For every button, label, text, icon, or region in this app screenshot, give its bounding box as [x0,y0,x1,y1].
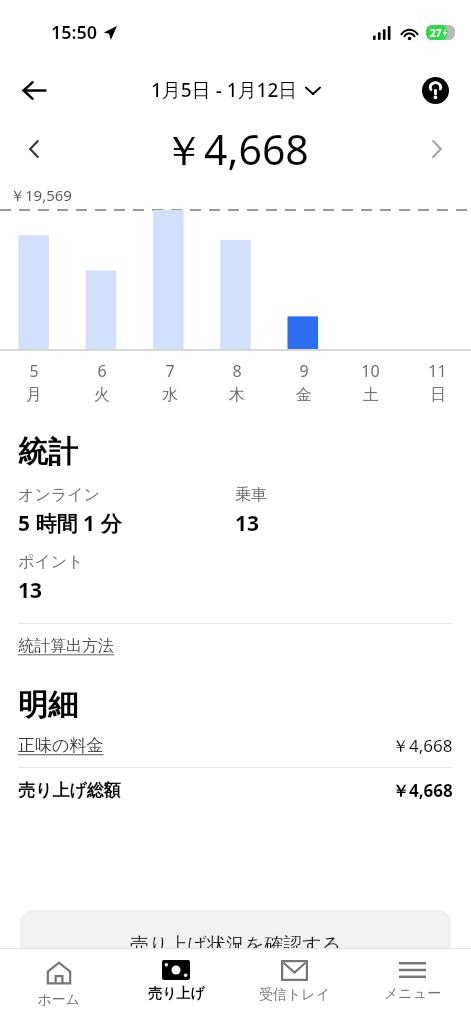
staticText: 受信トレイ [259,986,330,1004]
staticText: ホーム [37,991,80,1009]
button[interactable]: Next week [417,129,457,169]
button[interactable]: 6 [68,360,136,405]
staticText: 明細 [18,686,78,724]
staticText: 7 [165,360,175,382]
button[interactable]: 11 [404,360,471,405]
staticText: ￥4,668 [163,121,309,177]
button[interactable]: 5 [0,360,68,405]
staticText: 10 [361,360,380,382]
button[interactable]: 10 [337,360,404,405]
staticText: 8 [232,360,242,382]
staticText: 金 [296,385,312,405]
staticText: 乗車 [235,485,267,505]
button[interactable]: 正味の料金 [18,734,453,757]
staticText: 13 [18,576,43,605]
staticText: 統計 [18,433,78,471]
staticText: 水 [162,385,178,405]
staticText: 6 [97,360,107,382]
staticText: 13 [235,509,260,538]
staticText: ￥19,569 [10,185,72,205]
staticText: 11 [428,360,447,382]
staticText: 5 時間 1 分 [18,509,122,538]
button[interactable]: メニュー [353,949,471,1003]
staticText: 売り上げ状況を確認する [130,933,342,948]
button[interactable]: 売り上げ状況を確認する [20,910,451,948]
button[interactable]: 受信トレイ [235,949,353,1004]
staticText: 1月5日 - 1月12日 [151,77,298,103]
staticText: オンライン [18,485,100,505]
button[interactable]: Previous week [14,129,54,169]
staticText: 月 [26,385,42,405]
staticText: 日 [430,385,446,405]
staticText: ￥4,668 [392,779,453,802]
button[interactable]: Help [413,68,457,112]
staticText: 木 [229,385,245,405]
staticText: 売り上げ [148,985,205,1003]
staticText: 統計算出方法 [18,636,114,656]
staticText: 15:50 [51,20,98,45]
button[interactable]: 1月5日 - 1月12日 [147,73,324,107]
staticText: ポイント [18,552,84,572]
staticText: 正味の料金 [18,735,104,756]
button[interactable]: Back [12,68,56,112]
button[interactable]: 7 [136,360,203,405]
staticText: 5 [29,360,39,382]
button[interactable]: 統計算出方法 [18,636,114,656]
button[interactable]: 売り上げ [117,949,235,1003]
staticText: ￥4,668 [392,734,453,757]
button[interactable]: ホーム [0,949,117,1009]
staticText: 売り上げ総額 [18,780,121,801]
button[interactable]: 9 [270,360,337,405]
staticText: 火 [94,385,110,405]
button[interactable]: 8 [203,360,270,405]
staticText: 9 [299,360,309,382]
staticText: メニュー [384,985,441,1003]
staticText: 27 [430,26,442,40]
staticText: 土 [363,385,379,405]
